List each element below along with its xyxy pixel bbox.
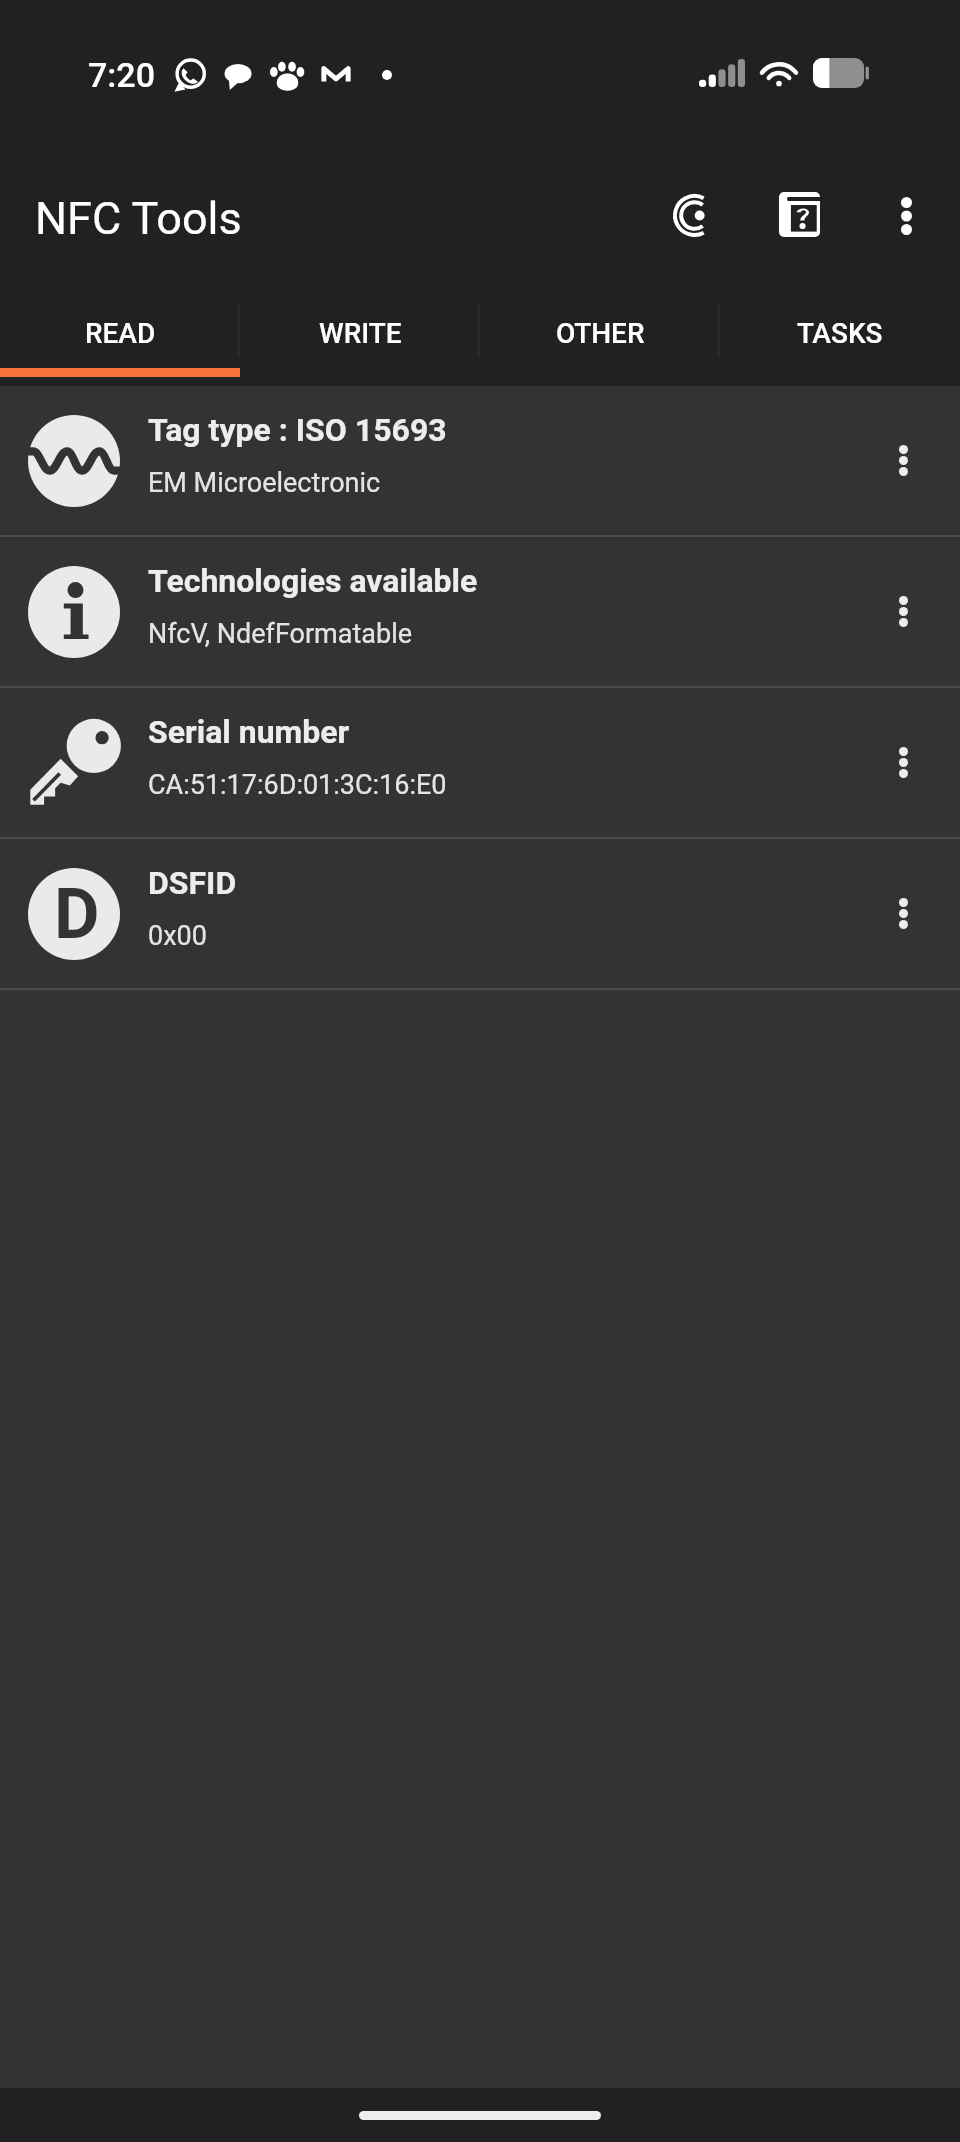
button[interactable]: More options [848, 839, 960, 988]
button[interactable]: Help [750, 162, 854, 266]
staticText: Serial number [148, 713, 350, 751]
staticText: WRITE [319, 317, 402, 350]
button[interactable]: READ [0, 288, 240, 386]
button[interactable]: Home [359, 2111, 601, 2120]
button[interactable]: More options [848, 386, 960, 535]
staticText: D [54, 873, 100, 955]
button[interactable]: More options [848, 537, 960, 686]
staticText: TASKS [797, 317, 883, 350]
button[interactable]: More options [854, 162, 958, 266]
staticText: 0x00 [148, 920, 207, 952]
button[interactable]: OTHER [480, 288, 720, 386]
button[interactable]: TASKS [720, 288, 960, 386]
button[interactable]: WRITE [240, 288, 480, 386]
button[interactable]: Tag type : ISO 15693 [0, 386, 960, 535]
staticText: 7:20 [88, 55, 155, 95]
button[interactable]: D [0, 839, 960, 988]
staticText: Technologies available [148, 562, 478, 600]
staticText: NfcV, NdefFormatable [148, 618, 413, 650]
staticText: EM Microelectronic [148, 467, 381, 499]
staticText: Tag type : ISO 15693 [148, 411, 447, 449]
button[interactable]: NFC [646, 162, 750, 266]
button[interactable]: Serial number [0, 688, 960, 837]
staticText: READ [85, 317, 156, 350]
staticText: NFC Tools [35, 192, 242, 245]
button[interactable]: Technologies available [0, 537, 960, 686]
staticText: DSFID [148, 864, 237, 902]
staticText: OTHER [556, 317, 645, 350]
staticText: CA:51:17:6D:01:3C:16:E0 [148, 769, 447, 801]
button[interactable]: More options [848, 688, 960, 837]
